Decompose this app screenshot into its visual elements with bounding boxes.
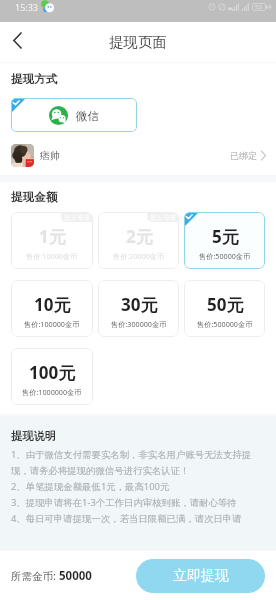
staticText: 提现金额 [11,190,58,205]
staticText: 提现页面 [109,33,167,51]
button[interactable]: 2元 [98,212,179,269]
button[interactable]: 50元 [184,280,265,337]
button[interactable]: 微信 [11,98,137,132]
staticText: 1、由于微信支付需要实名制，非实名用户账号无法支持提现，请务必将提现的微信号进行… [11,448,265,477]
staticText: 50000 [59,568,92,584]
staticText: 售价:10000金币 [26,251,78,261]
staticText: 售价:500000金币 [197,319,253,329]
button[interactable]: 痞帅 [0,144,276,167]
staticText: 微信 [76,109,99,123]
staticText: 提现方式 [11,72,58,87]
staticText: 15:33 [15,1,39,13]
staticText: 2、单笔提现金额最低1元，最高100元 [11,480,170,493]
button[interactable]: 1元 [11,212,93,269]
button[interactable]: 100元 [11,348,93,405]
staticText: 1元 [39,225,66,248]
staticText: 新人专享 [150,214,177,222]
staticText: 5元 [212,225,239,248]
staticText: 已绑定 [230,150,257,161]
button[interactable]: 30元 [98,280,179,337]
staticText: 100元 [29,361,76,384]
button[interactable]: Back [0,23,34,57]
staticText: 售价:1000000金币 [22,387,82,397]
staticText: 售价:300000金币 [111,319,167,329]
staticText: 10元 [34,293,71,316]
staticText: 30元 [121,293,158,316]
button[interactable]: 立即提现 [136,559,265,593]
staticText: 50元 [207,293,244,316]
staticText: 新人专享 [64,214,91,222]
staticText: 提现说明 [11,429,56,443]
staticText: 售价:100000金币 [24,319,80,329]
staticText: 痞帅 [40,149,60,162]
staticText: 53 [255,3,262,11]
button[interactable]: 5元 [184,212,265,269]
staticText: 所需金币: [11,569,59,583]
staticText: 售价:20000金币 [113,251,165,261]
staticText: 售价:50000金币 [199,251,251,261]
button[interactable]: 10元 [11,280,93,337]
staticText: 2元 [126,225,153,248]
staticText: 立即提现 [173,567,229,585]
staticText: 4、每日可申请提现一次，若当日限额已满，请次日申请 [11,512,242,525]
staticText: 3、提现申请将在1-3个工作日内审核到账，请耐心等待 [11,496,237,509]
